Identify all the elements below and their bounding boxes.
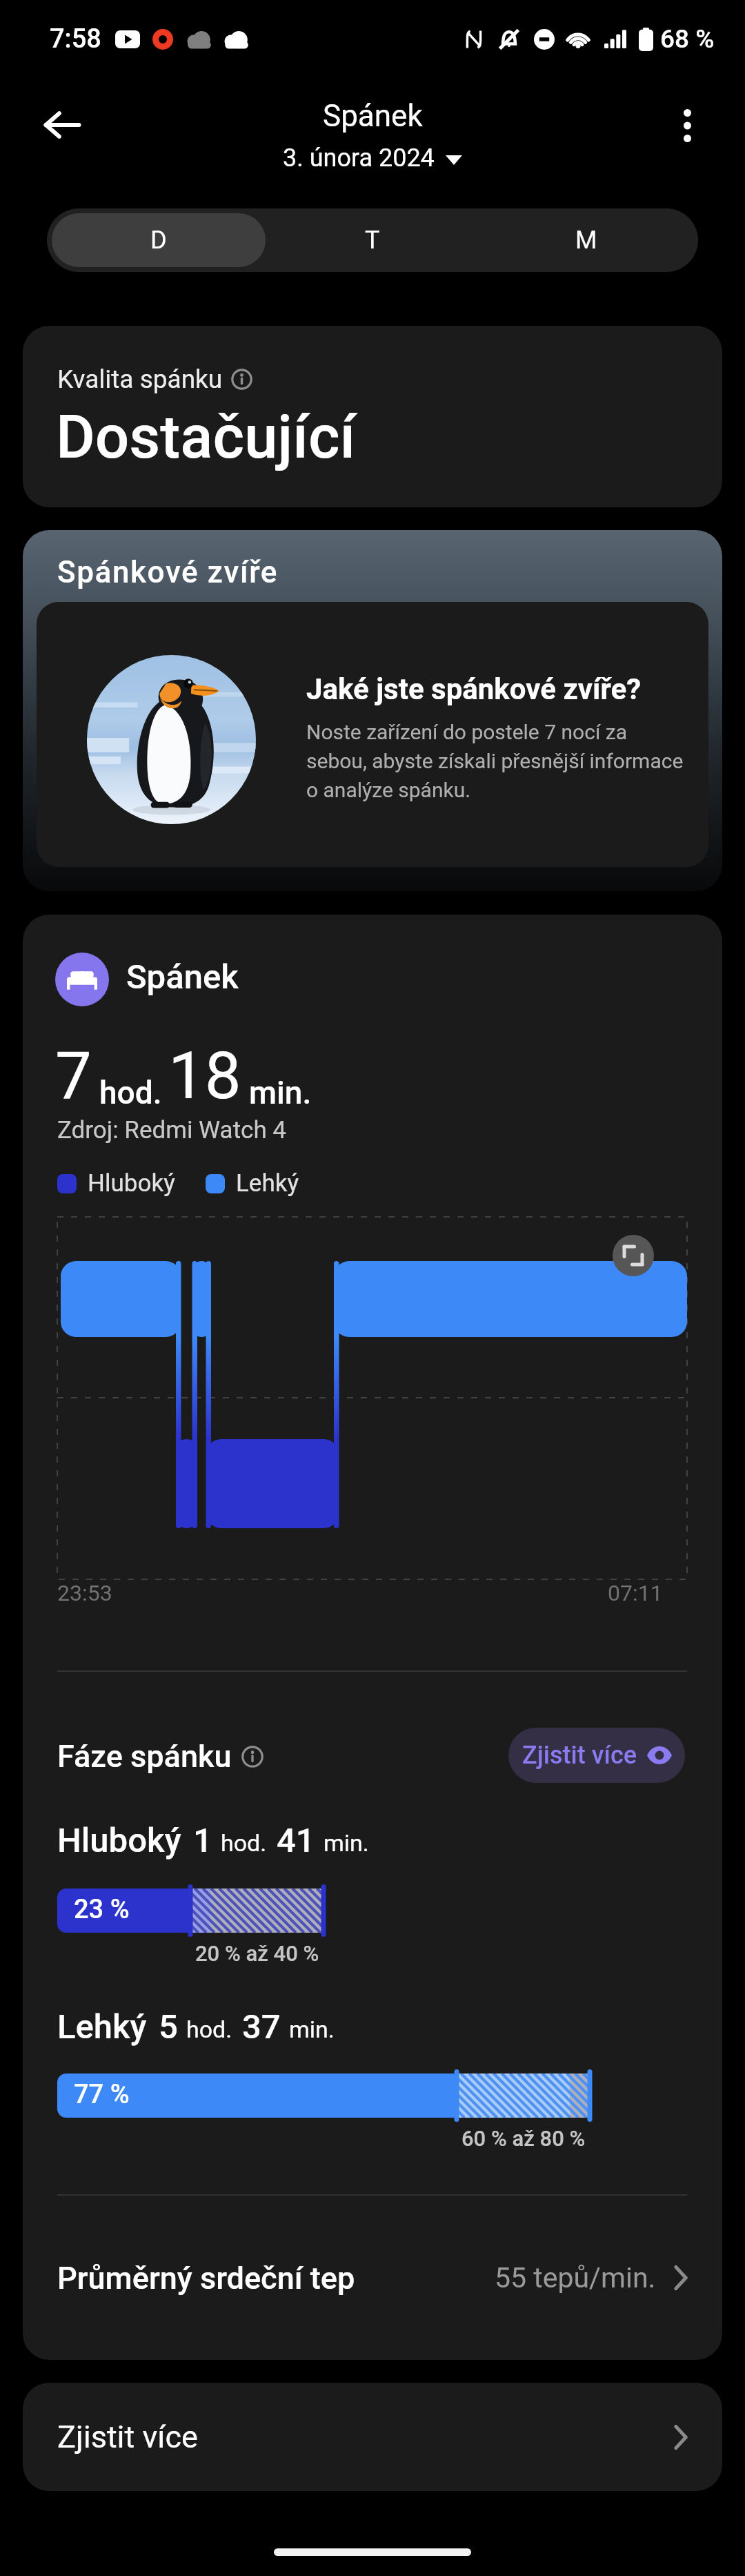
- staticText: Průměrný srdeční tep: [57, 2260, 355, 2296]
- button[interactable]: Kvalita spánku: [23, 326, 722, 507]
- button[interactable]: More options: [658, 97, 716, 155]
- staticText: Lehký: [236, 1169, 299, 1198]
- staticText: hod.: [99, 1074, 162, 1111]
- staticText: Spánkové zvíře: [57, 554, 279, 590]
- staticText: Fáze spánku: [57, 1738, 232, 1775]
- staticText: Spánek: [126, 957, 239, 997]
- staticText: 68 %: [660, 24, 715, 54]
- staticText: 3. února 2024: [283, 144, 435, 173]
- button[interactable]: Zjistit více: [508, 1728, 685, 1783]
- staticText: min.: [324, 1829, 369, 1857]
- staticText: 18: [168, 1038, 241, 1114]
- staticText: hod.: [186, 2016, 232, 2043]
- staticText: 55 tepů/min.: [495, 2261, 656, 2294]
- staticText: Spánek: [323, 98, 423, 134]
- staticText: 07:11: [608, 1580, 663, 1606]
- button[interactable]: M: [479, 213, 693, 267]
- button[interactable]: T: [266, 213, 479, 267]
- button[interactable]: 3. února 2024: [277, 142, 468, 175]
- staticText: 1: [193, 1821, 212, 1860]
- staticText: 41: [277, 1821, 315, 1860]
- staticText: M: [575, 226, 597, 255]
- staticText: D: [150, 226, 167, 255]
- staticText: 7: [55, 1038, 92, 1114]
- button[interactable]: Zjistit více: [23, 2383, 722, 2491]
- button[interactable]: D: [52, 213, 266, 267]
- staticText: Hluboký: [88, 1169, 175, 1198]
- button[interactable]: Průměrný srdeční tep: [23, 2196, 722, 2360]
- staticText: Lehký: [57, 2007, 147, 2047]
- staticText: Dostačující: [56, 402, 356, 472]
- staticText: 77 %: [74, 2079, 130, 2110]
- staticText: 60 % až 80 %: [461, 2126, 586, 2151]
- staticText: 20 % až 40 %: [195, 1941, 319, 1966]
- button[interactable]: Back: [32, 95, 92, 155]
- button[interactable]: Expand chart: [613, 1235, 654, 1276]
- staticText: Zjistit více: [57, 2419, 198, 2455]
- staticText: Noste zařízení do postele 7 nocí za sebo…: [306, 720, 687, 803]
- staticText: 5: [159, 2007, 178, 2047]
- staticText: Kvalita spánku: [57, 364, 223, 394]
- staticText: 23:53: [57, 1580, 112, 1606]
- staticText: Jaké jste spánkové zvíře?: [306, 672, 642, 706]
- staticText: 37: [242, 2007, 281, 2047]
- staticText: Hluboký: [57, 1821, 181, 1860]
- staticText: Zjistit více: [522, 1741, 637, 1770]
- staticText: T: [365, 226, 380, 255]
- button[interactable]: Jaké jste spánkové zvíře?: [37, 602, 708, 867]
- staticText: hod.: [221, 1829, 267, 1857]
- staticText: min.: [289, 2016, 335, 2043]
- staticText: Zdroj: Redmi Watch 4: [57, 1116, 287, 1144]
- staticText: 7:58: [50, 23, 101, 55]
- staticText: 23 %: [74, 1894, 130, 1925]
- staticText: min.: [249, 1074, 312, 1111]
